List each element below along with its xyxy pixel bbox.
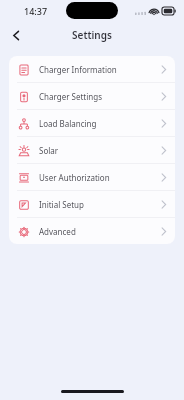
staticText: Initial Setup bbox=[39, 199, 84, 210]
staticText: Load Balancing bbox=[39, 118, 97, 129]
button[interactable]: Back bbox=[4, 23, 28, 47]
button[interactable]: Solar bbox=[9, 137, 175, 163]
button[interactable]: Initial Setup bbox=[9, 191, 175, 217]
staticText: Advanced bbox=[39, 226, 76, 237]
staticText: Settings bbox=[72, 28, 112, 42]
staticText: Charger Settings bbox=[39, 91, 102, 102]
button[interactable]: Advanced bbox=[9, 218, 175, 244]
staticText: Charger Information bbox=[39, 64, 117, 75]
staticText: 14:37 bbox=[24, 5, 48, 17]
button[interactable]: Load Balancing bbox=[9, 110, 175, 136]
button[interactable]: User Authorization bbox=[9, 164, 175, 190]
button[interactable]: Charger Information bbox=[9, 56, 175, 82]
staticText: User Authorization bbox=[39, 172, 110, 183]
button[interactable]: Charger Settings bbox=[9, 83, 175, 109]
staticText: Solar bbox=[39, 145, 59, 156]
